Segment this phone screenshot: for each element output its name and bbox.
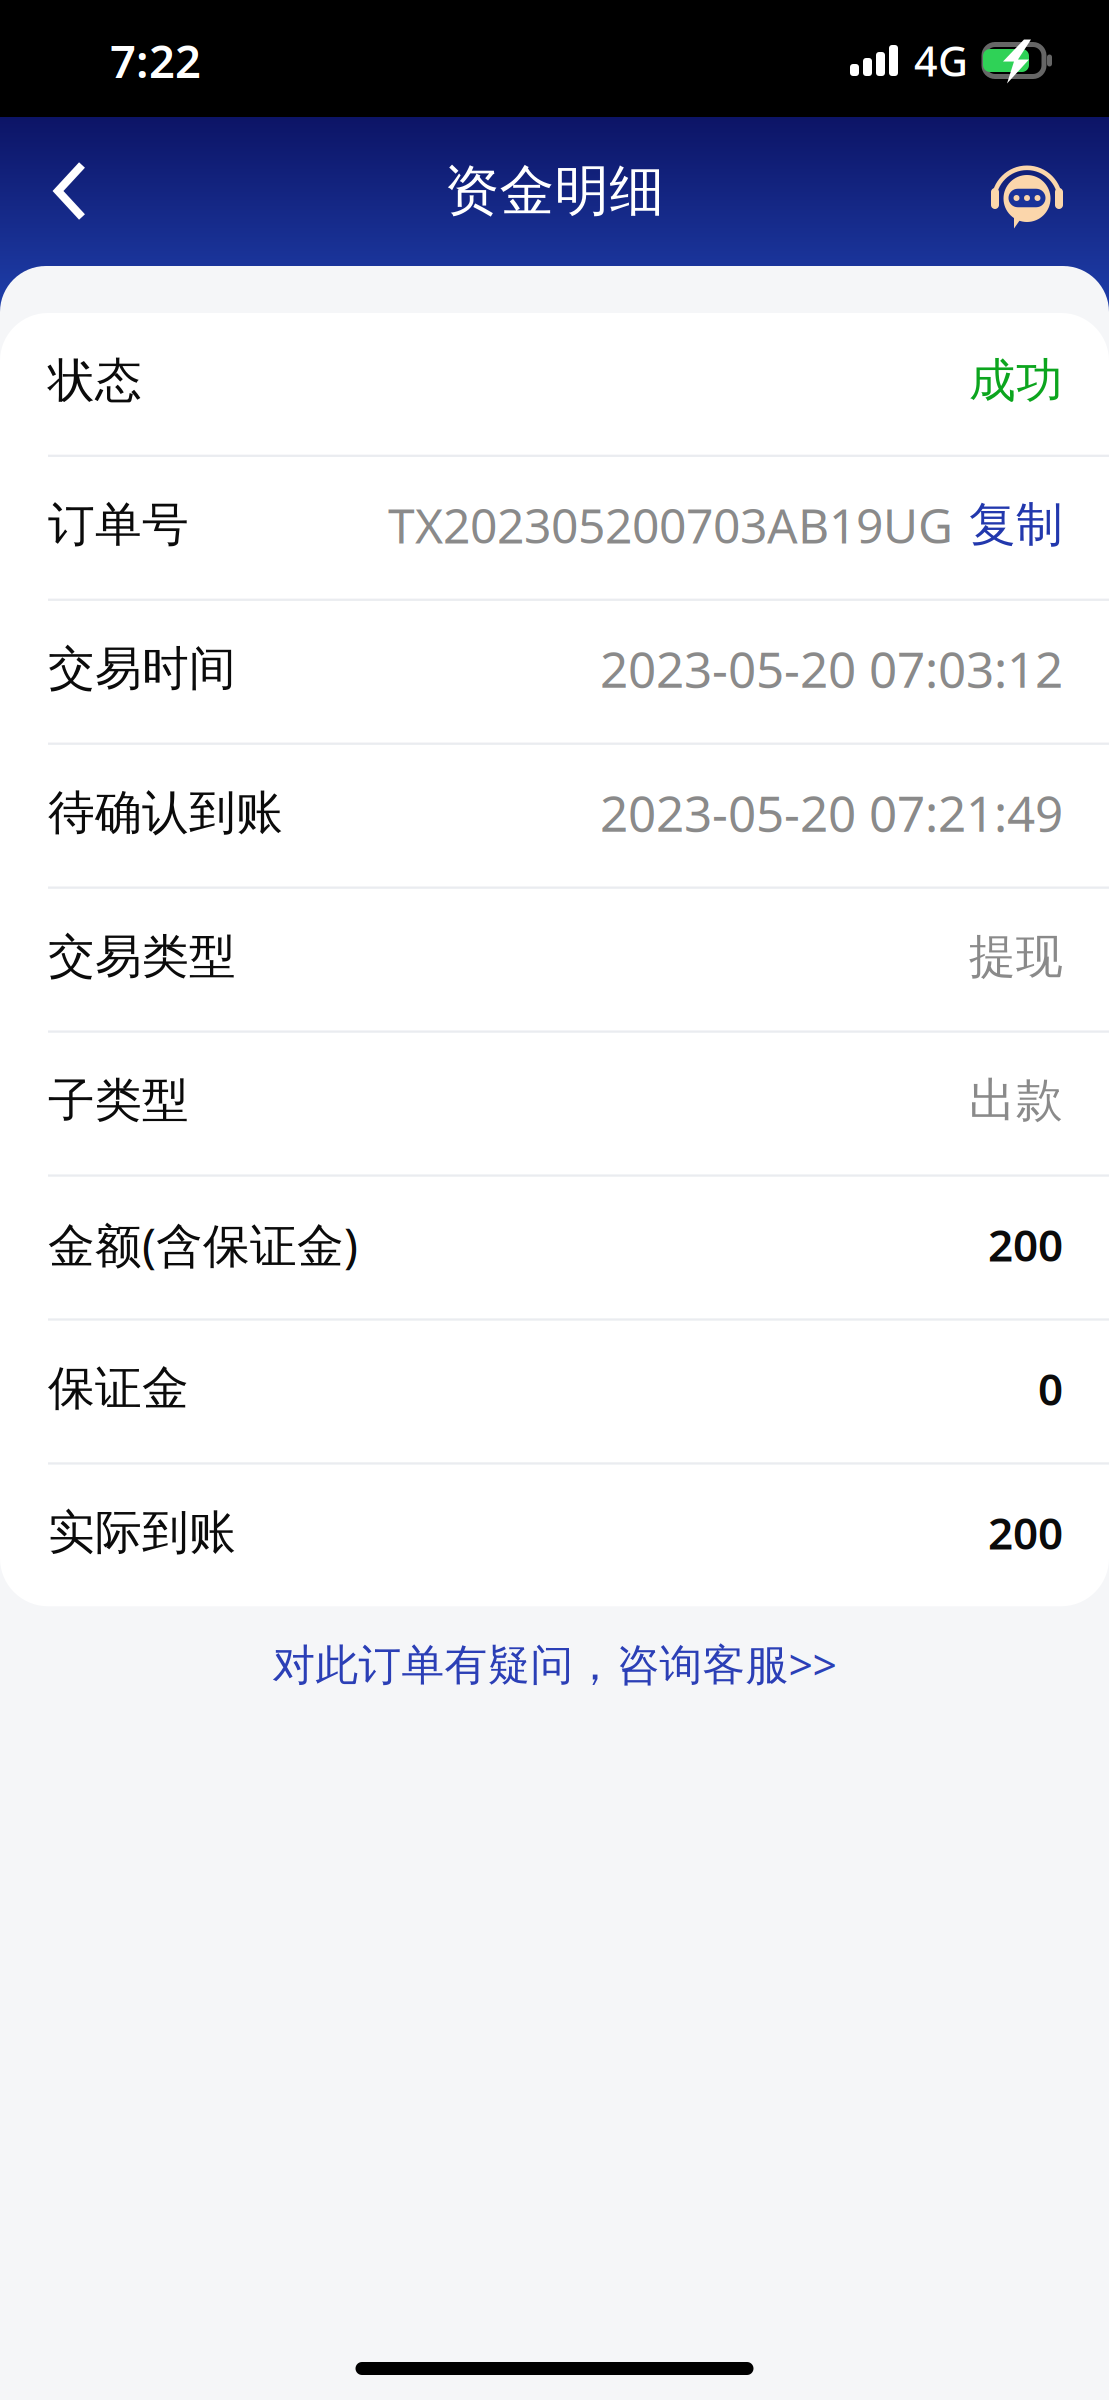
staticText: 金额(含保证金) [48,1213,358,1275]
staticText: 0 [1038,1359,1063,1418]
staticText: 提现 [969,928,1063,985]
staticText: 实际到账 [48,1504,236,1561]
staticText: 7:22 [110,30,201,91]
staticText: 200 [988,1215,1063,1274]
staticText: 子类型 [48,1072,189,1129]
staticText: 订单号 [48,496,189,553]
staticText: 200 [988,1503,1063,1562]
staticText: 2023-05-20 07:21:49 [600,780,1063,845]
staticText: 待确认到账 [48,784,283,841]
staticText: 保证金 [48,1360,189,1417]
staticText: 2023-05-20 07:03:12 [600,636,1063,701]
button[interactable]: 对此订单有疑问，咨询客服>> [0,1606,1109,1727]
staticText: 状态 [48,352,142,409]
button[interactable]: Customer support [987,117,1109,265]
staticText: 资金明细 [444,157,664,224]
staticText: 交易时间 [48,640,236,697]
staticText: 复制 [969,496,1063,553]
button[interactable]: Back [0,117,140,265]
staticText: 交易类型 [48,928,236,985]
staticText: 4G [914,33,968,88]
staticText: 出款 [969,1072,1063,1129]
staticText: 成功 [969,352,1063,409]
staticText: TX202305200703AB19UG [388,493,953,557]
staticText: 对此订单有疑问，咨询客服>> [272,1635,836,1692]
